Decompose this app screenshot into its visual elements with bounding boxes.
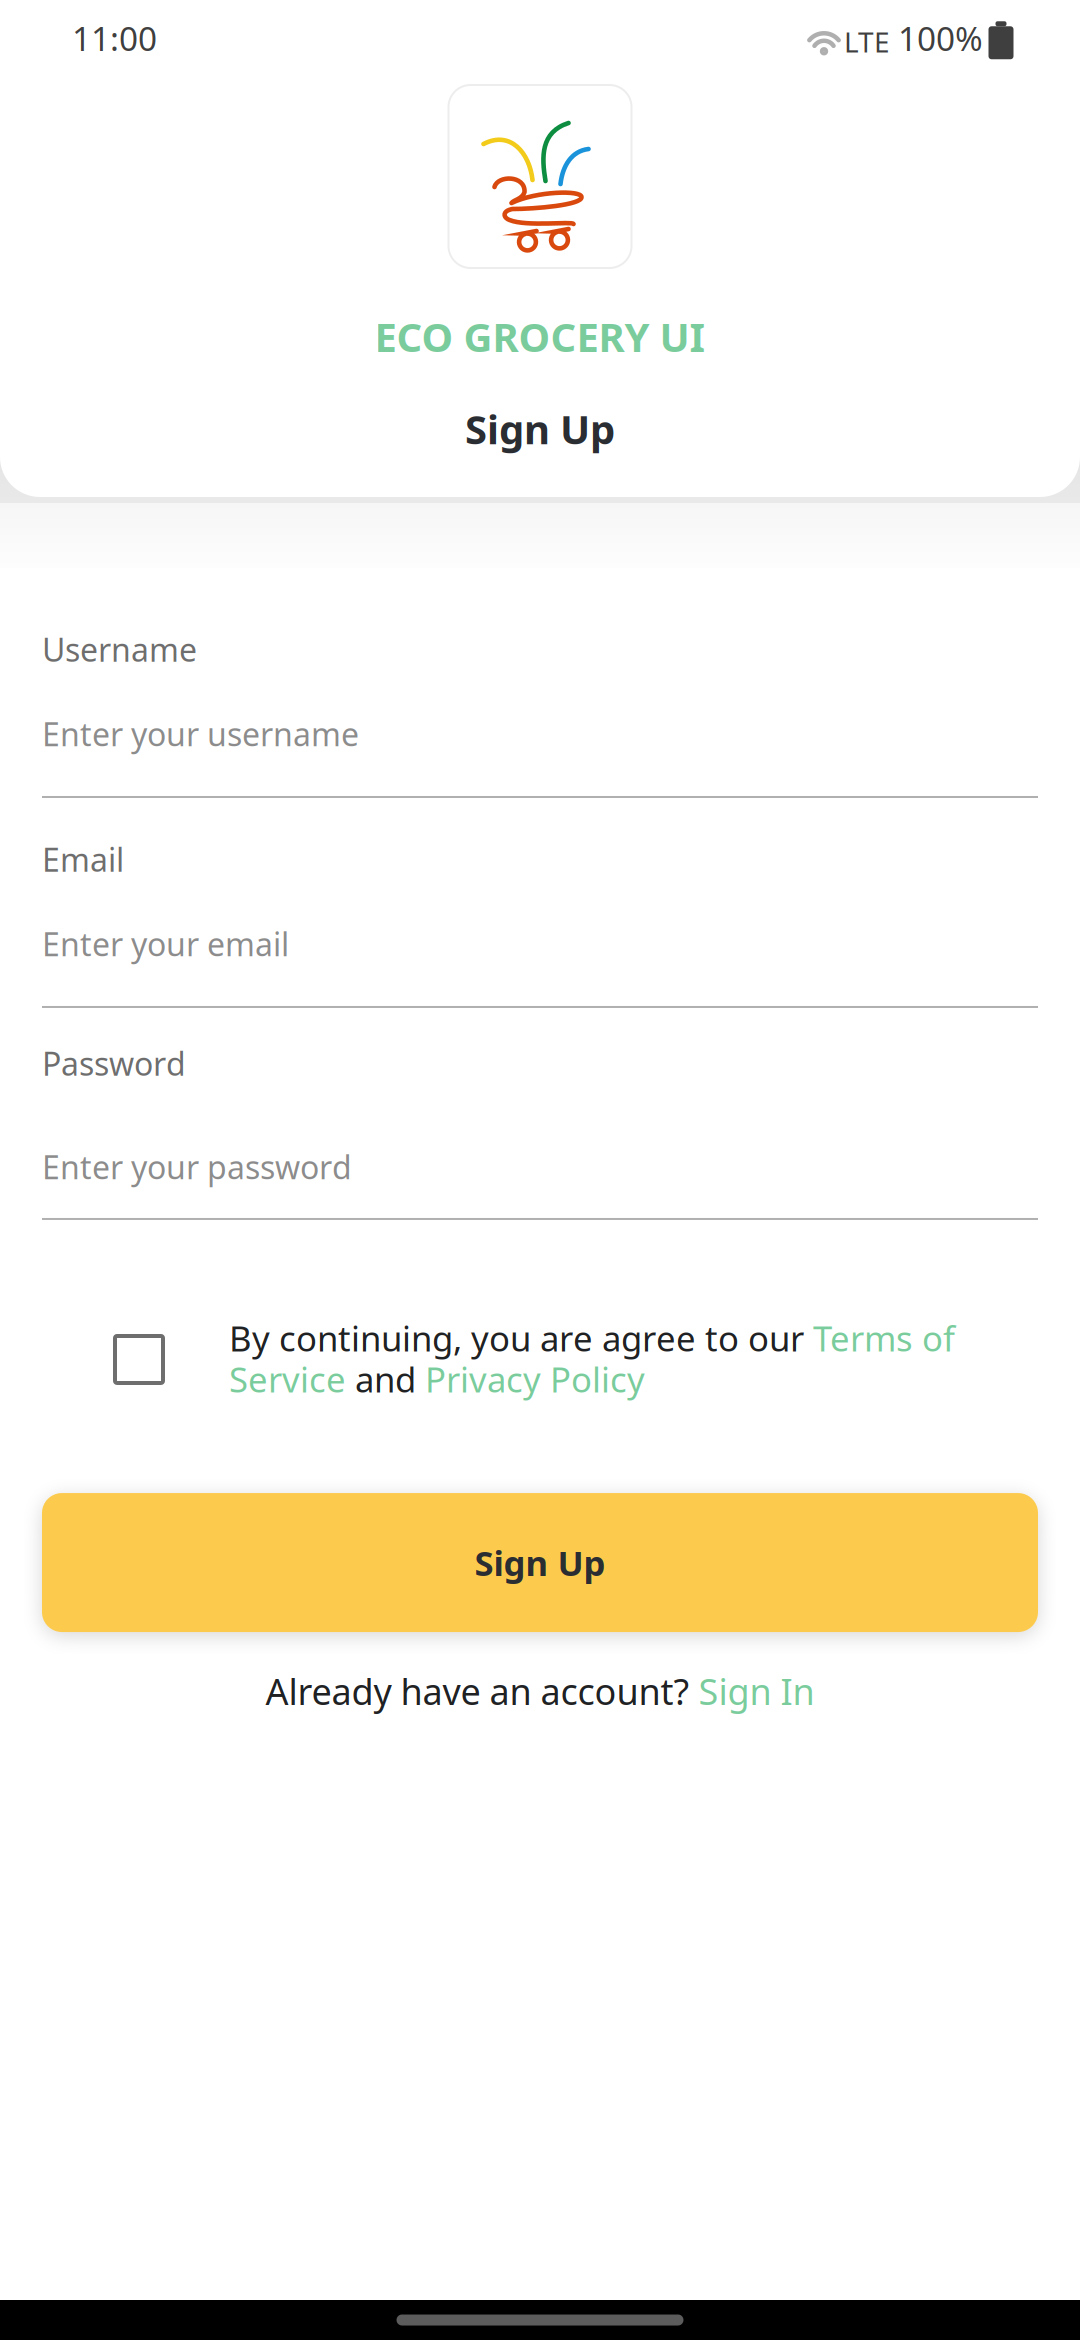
staticText: By continuing, you are agree to our Term… [229, 1315, 955, 1402]
staticText: Already have an account? [265, 1667, 698, 1715]
button[interactable]: Email [42, 838, 1038, 1008]
staticText: Sign In [698, 1667, 814, 1715]
staticText: Enter your email [42, 922, 289, 965]
staticText: 100% [898, 16, 983, 60]
staticText: Sign Up [465, 402, 615, 455]
button[interactable]: Sign In [698, 1667, 814, 1715]
staticText: Enter your password [42, 1145, 352, 1188]
staticText: Sign Up [474, 1539, 605, 1585]
staticText: LTE [844, 23, 890, 60]
button[interactable]: By continuing, you are agree to our Term… [42, 1315, 1038, 1402]
staticText: Enter your username [42, 712, 359, 755]
staticText: Password [42, 1042, 186, 1084]
staticText: Email [42, 838, 124, 880]
staticText: Username [42, 628, 197, 670]
staticText: ECO GROCERY UI [374, 310, 705, 363]
staticText: 11:00 [72, 16, 157, 60]
button[interactable]: Sign Up [42, 1493, 1038, 1632]
button[interactable]: Password [42, 1042, 1038, 1220]
button[interactable]: Username [42, 628, 1038, 798]
